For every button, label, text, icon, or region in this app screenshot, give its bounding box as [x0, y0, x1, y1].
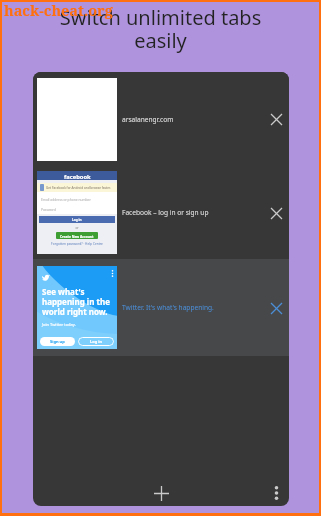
staticText: Password	[41, 207, 56, 211]
button[interactable]: Close tab	[263, 295, 289, 321]
staticText: Log in	[90, 339, 103, 344]
staticText: Create New Account	[60, 234, 94, 238]
staticText: Facebook – log in or sign up	[122, 208, 263, 217]
staticText: or	[37, 226, 117, 230]
staticText: Log in	[72, 218, 82, 222]
button[interactable]: arsalanengr.com	[33, 72, 289, 166]
button[interactable]: facebook	[33, 166, 289, 259]
button[interactable]: Close tab	[263, 200, 289, 226]
staticText: hack-cheat.org	[4, 0, 113, 20]
staticText: Email address or phone number	[41, 197, 91, 201]
staticText: See what's happening in the world right …	[42, 286, 110, 317]
button[interactable]: New tab	[148, 480, 174, 506]
button[interactable]: See what's happening in the world right …	[33, 259, 289, 356]
button[interactable]: More options	[263, 480, 289, 506]
staticText: arsalanengr.com	[122, 115, 263, 124]
staticText: Twitter. It's what's happening.	[122, 303, 263, 312]
staticText: Sign up	[50, 339, 65, 344]
button[interactable]: Close tab	[263, 106, 289, 132]
staticText: Switch unlimited tabs easily	[2, 4, 319, 54]
staticText: facebook	[64, 173, 91, 181]
staticText: Forgotten password? · Help Centre	[37, 242, 117, 246]
staticText: Join Twitter today.	[42, 322, 76, 327]
staticText: Get Facebook for Android and browse fast…	[46, 186, 111, 190]
